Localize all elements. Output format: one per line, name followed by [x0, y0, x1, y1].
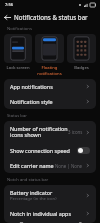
staticText: Floating notifications — [37, 65, 62, 76]
staticText: 7:56 — [5, 2, 13, 7]
button[interactable]: App notifications — [4, 79, 96, 94]
button[interactable]: Notification style — [4, 94, 96, 109]
staticText: Status bar — [7, 113, 28, 119]
button[interactable]: Items shown on the Lock screen after — [4, 221, 96, 223]
staticText: Notification style — [10, 98, 53, 105]
staticText: Show connection speed — [10, 147, 70, 154]
staticText: Badges — [74, 65, 89, 71]
staticText: Number of notification icons shown — [10, 125, 68, 139]
button[interactable]: Floating notifications — [35, 34, 64, 76]
staticText: App notifications — [10, 83, 53, 90]
button[interactable]: Edit carrier name — [4, 158, 96, 173]
staticText: Notch in individual apps — [10, 210, 72, 217]
staticText: Edit carrier name — [10, 162, 54, 169]
staticText: Lock screen — [6, 65, 30, 71]
button[interactable]: Lock screen — [4, 34, 32, 71]
staticText: Notch and status bar — [7, 177, 49, 183]
staticText: Percentage (in the icon) — [10, 196, 57, 202]
staticText: Battery indicator — [10, 189, 53, 196]
button[interactable]: Number of notification icons shown — [4, 121, 96, 143]
button[interactable]: Battery indicator — [4, 185, 96, 206]
button[interactable]: Notch in individual apps — [4, 206, 96, 221]
staticText: Notifications & status bar — [14, 13, 88, 21]
button[interactable]: Badges — [67, 34, 96, 71]
staticText: Notifications — [7, 26, 32, 32]
button[interactable]: Show connection speed — [4, 143, 96, 158]
button[interactable]: Toggle Show connection speed — [77, 147, 90, 154]
button[interactable]: Back — [0, 10, 14, 24]
staticText: None | None — [55, 163, 83, 169]
staticText: 3 icons — [68, 129, 83, 135]
